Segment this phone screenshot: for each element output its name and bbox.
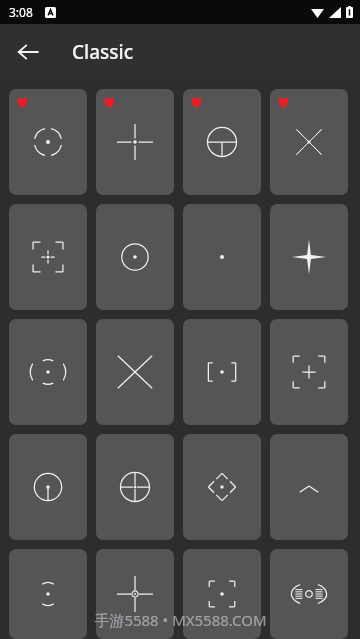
- button[interactable]: Reticle 1: [9, 89, 87, 195]
- button[interactable]: Reticle 3: [183, 89, 261, 195]
- button[interactable]: Reticle 19: [183, 549, 261, 639]
- button[interactable]: Reticle 2: [96, 89, 174, 195]
- button[interactable]: Reticle 8: [270, 204, 348, 310]
- button[interactable]: Reticle 4: [270, 89, 348, 195]
- button[interactable]: Reticle 10: [96, 319, 174, 425]
- button[interactable]: Reticle 13: [9, 434, 87, 540]
- button[interactable]: Reticle 20: [270, 549, 348, 639]
- staticText: 手游5588 • MX5588.COM: [94, 610, 267, 630]
- button[interactable]: Reticle 16: [270, 434, 348, 540]
- button[interactable]: Reticle 18: [96, 549, 174, 639]
- button[interactable]: Reticle 17: [9, 549, 87, 639]
- button[interactable]: Reticle 12: [270, 319, 348, 425]
- button[interactable]: Reticle 15: [183, 434, 261, 540]
- button[interactable]: Reticle 7: [183, 204, 261, 310]
- button[interactable]: Reticle 9: [9, 319, 87, 425]
- button[interactable]: Reticle 6: [96, 204, 174, 310]
- button[interactable]: Reticle 5: [9, 204, 87, 310]
- staticText: 3:08: [9, 4, 33, 20]
- staticText: Classic: [72, 39, 133, 65]
- button[interactable]: Reticle 14: [96, 434, 174, 540]
- button[interactable]: Reticle 11: [183, 319, 261, 425]
- button[interactable]: Back: [4, 28, 52, 76]
